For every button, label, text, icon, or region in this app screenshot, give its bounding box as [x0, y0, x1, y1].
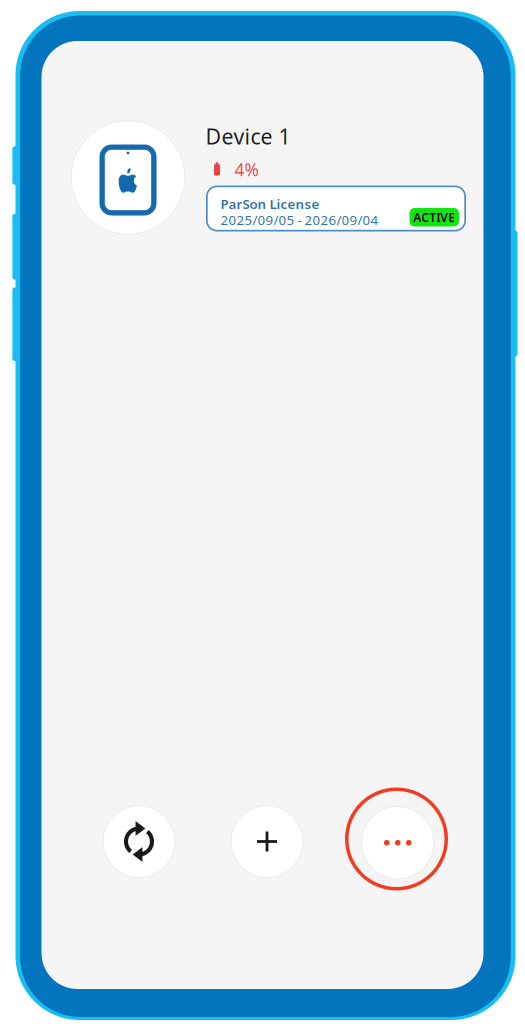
staticText: 4%: [234, 158, 258, 181]
button[interactable]: Add: [230, 805, 303, 878]
staticText: Device 1: [205, 122, 290, 150]
staticText: 2025/09/05 - 2026/09/04: [220, 211, 378, 229]
button[interactable]: Refresh: [102, 805, 175, 878]
button[interactable]: More options: [361, 806, 434, 879]
button[interactable]: ParSon License: [206, 185, 466, 231]
staticText: ACTIVE: [413, 209, 455, 225]
staticText: ParSon License: [220, 195, 319, 213]
